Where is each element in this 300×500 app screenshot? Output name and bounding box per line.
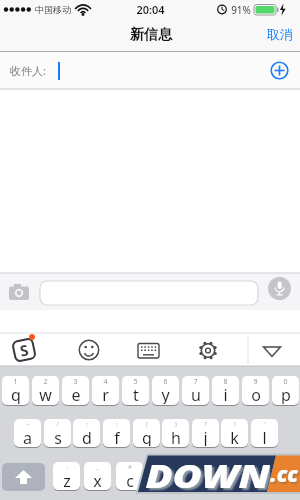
staticText: g <box>142 427 152 446</box>
staticText: q <box>11 384 21 404</box>
button[interactable] <box>6 282 32 304</box>
button[interactable] <box>268 277 291 300</box>
button[interactable]: _ <box>84 462 111 490</box>
button[interactable] <box>40 281 258 305</box>
button[interactable]: ; <box>103 419 130 447</box>
staticText: ) <box>175 420 177 428</box>
staticText: 91% <box>231 3 251 17</box>
staticText: a <box>23 427 32 446</box>
staticText: DOWN <box>145 454 270 493</box>
button[interactable]: 5 <box>122 376 149 405</box>
staticText: u <box>191 384 201 404</box>
button[interactable] <box>272 463 298 491</box>
staticText: c <box>126 470 134 489</box>
staticText: b <box>188 470 198 489</box>
button[interactable] <box>197 340 219 361</box>
staticText: 4 <box>103 377 108 385</box>
button[interactable]: ! <box>221 419 248 447</box>
button[interactable]: S <box>11 337 37 363</box>
button[interactable]: 1 <box>2 376 29 405</box>
staticText: ( <box>146 420 148 428</box>
staticText: h <box>171 427 181 446</box>
staticText: p <box>281 384 291 404</box>
staticText: = <box>159 463 163 471</box>
button[interactable]: 取消 <box>260 24 300 43</box>
staticText: r <box>102 384 109 404</box>
staticText: k <box>230 427 239 446</box>
staticText: _ <box>96 463 99 471</box>
staticText: # <box>128 463 132 471</box>
staticText: e <box>71 384 81 404</box>
staticText: : <box>86 420 88 428</box>
button[interactable] <box>261 342 283 360</box>
button[interactable]: 3 <box>62 376 89 405</box>
staticText: - <box>66 463 68 471</box>
staticText: 7 <box>193 377 198 385</box>
button[interactable]: 7 <box>182 376 209 405</box>
staticText: 5 <box>133 377 138 385</box>
staticText: 6 <box>163 377 168 385</box>
staticText: .cc <box>270 460 298 489</box>
staticText: 20:04 <box>136 2 165 17</box>
staticText: v <box>156 470 165 489</box>
staticText: ; <box>116 420 118 428</box>
staticText: ~ <box>26 420 30 428</box>
staticText: j <box>203 427 208 446</box>
staticText: l <box>262 427 267 446</box>
button[interactable]: 0 <box>272 376 299 405</box>
button[interactable]: ) <box>162 419 189 447</box>
staticText: S <box>18 339 31 361</box>
button[interactable]: # <box>116 462 143 490</box>
button[interactable]: + <box>211 462 238 490</box>
button[interactable]: 2 <box>32 376 59 405</box>
staticText: 3 <box>73 377 78 385</box>
staticText: 0 <box>283 377 288 385</box>
staticText: 1 <box>13 377 18 385</box>
staticText: d <box>82 427 92 446</box>
button[interactable] <box>0 52 300 89</box>
button[interactable]: ~ <box>14 419 41 447</box>
button[interactable]: 4 <box>92 376 119 405</box>
button[interactable]: * <box>179 462 206 490</box>
button[interactable]: 9 <box>242 376 269 405</box>
staticText: ! <box>234 420 236 428</box>
button[interactable]: / <box>44 419 71 447</box>
button[interactable]: ( <box>133 419 160 447</box>
button[interactable]: : <box>73 419 100 447</box>
staticText: n <box>220 470 230 489</box>
staticText: " <box>254 463 257 471</box>
staticText: 2 <box>43 377 48 385</box>
button[interactable]: = <box>147 462 174 490</box>
button[interactable]: ? <box>192 419 219 447</box>
staticText: * <box>191 463 195 471</box>
staticText: ' <box>264 420 266 428</box>
staticText: t <box>133 384 139 404</box>
staticText: 9 <box>253 377 258 385</box>
staticText: 8 <box>223 377 228 385</box>
button[interactable]: " <box>242 462 269 490</box>
staticText: i <box>223 384 228 404</box>
button[interactable]: 8 <box>212 376 239 405</box>
staticText: ? <box>204 420 207 428</box>
button[interactable]: ' <box>251 419 278 447</box>
button[interactable] <box>266 57 294 85</box>
staticText: o <box>251 384 261 404</box>
button[interactable]: - <box>53 462 80 490</box>
staticText: 取消 <box>267 26 293 42</box>
staticText: y <box>161 384 170 404</box>
staticText: m <box>248 470 263 489</box>
staticText: w <box>39 384 52 404</box>
button[interactable] <box>2 463 45 491</box>
staticText: 收件人: <box>10 63 46 78</box>
staticText: s <box>54 427 62 446</box>
staticText: 中国移动 <box>35 4 71 15</box>
staticText: f <box>114 427 120 446</box>
button[interactable]: 6 <box>152 376 179 405</box>
button[interactable] <box>137 340 160 360</box>
staticText: + <box>223 463 227 471</box>
staticText: z <box>63 470 71 489</box>
staticText: 新信息 <box>130 26 172 44</box>
button[interactable] <box>78 339 100 361</box>
staticText: / <box>56 420 59 428</box>
staticText: x <box>93 470 102 489</box>
